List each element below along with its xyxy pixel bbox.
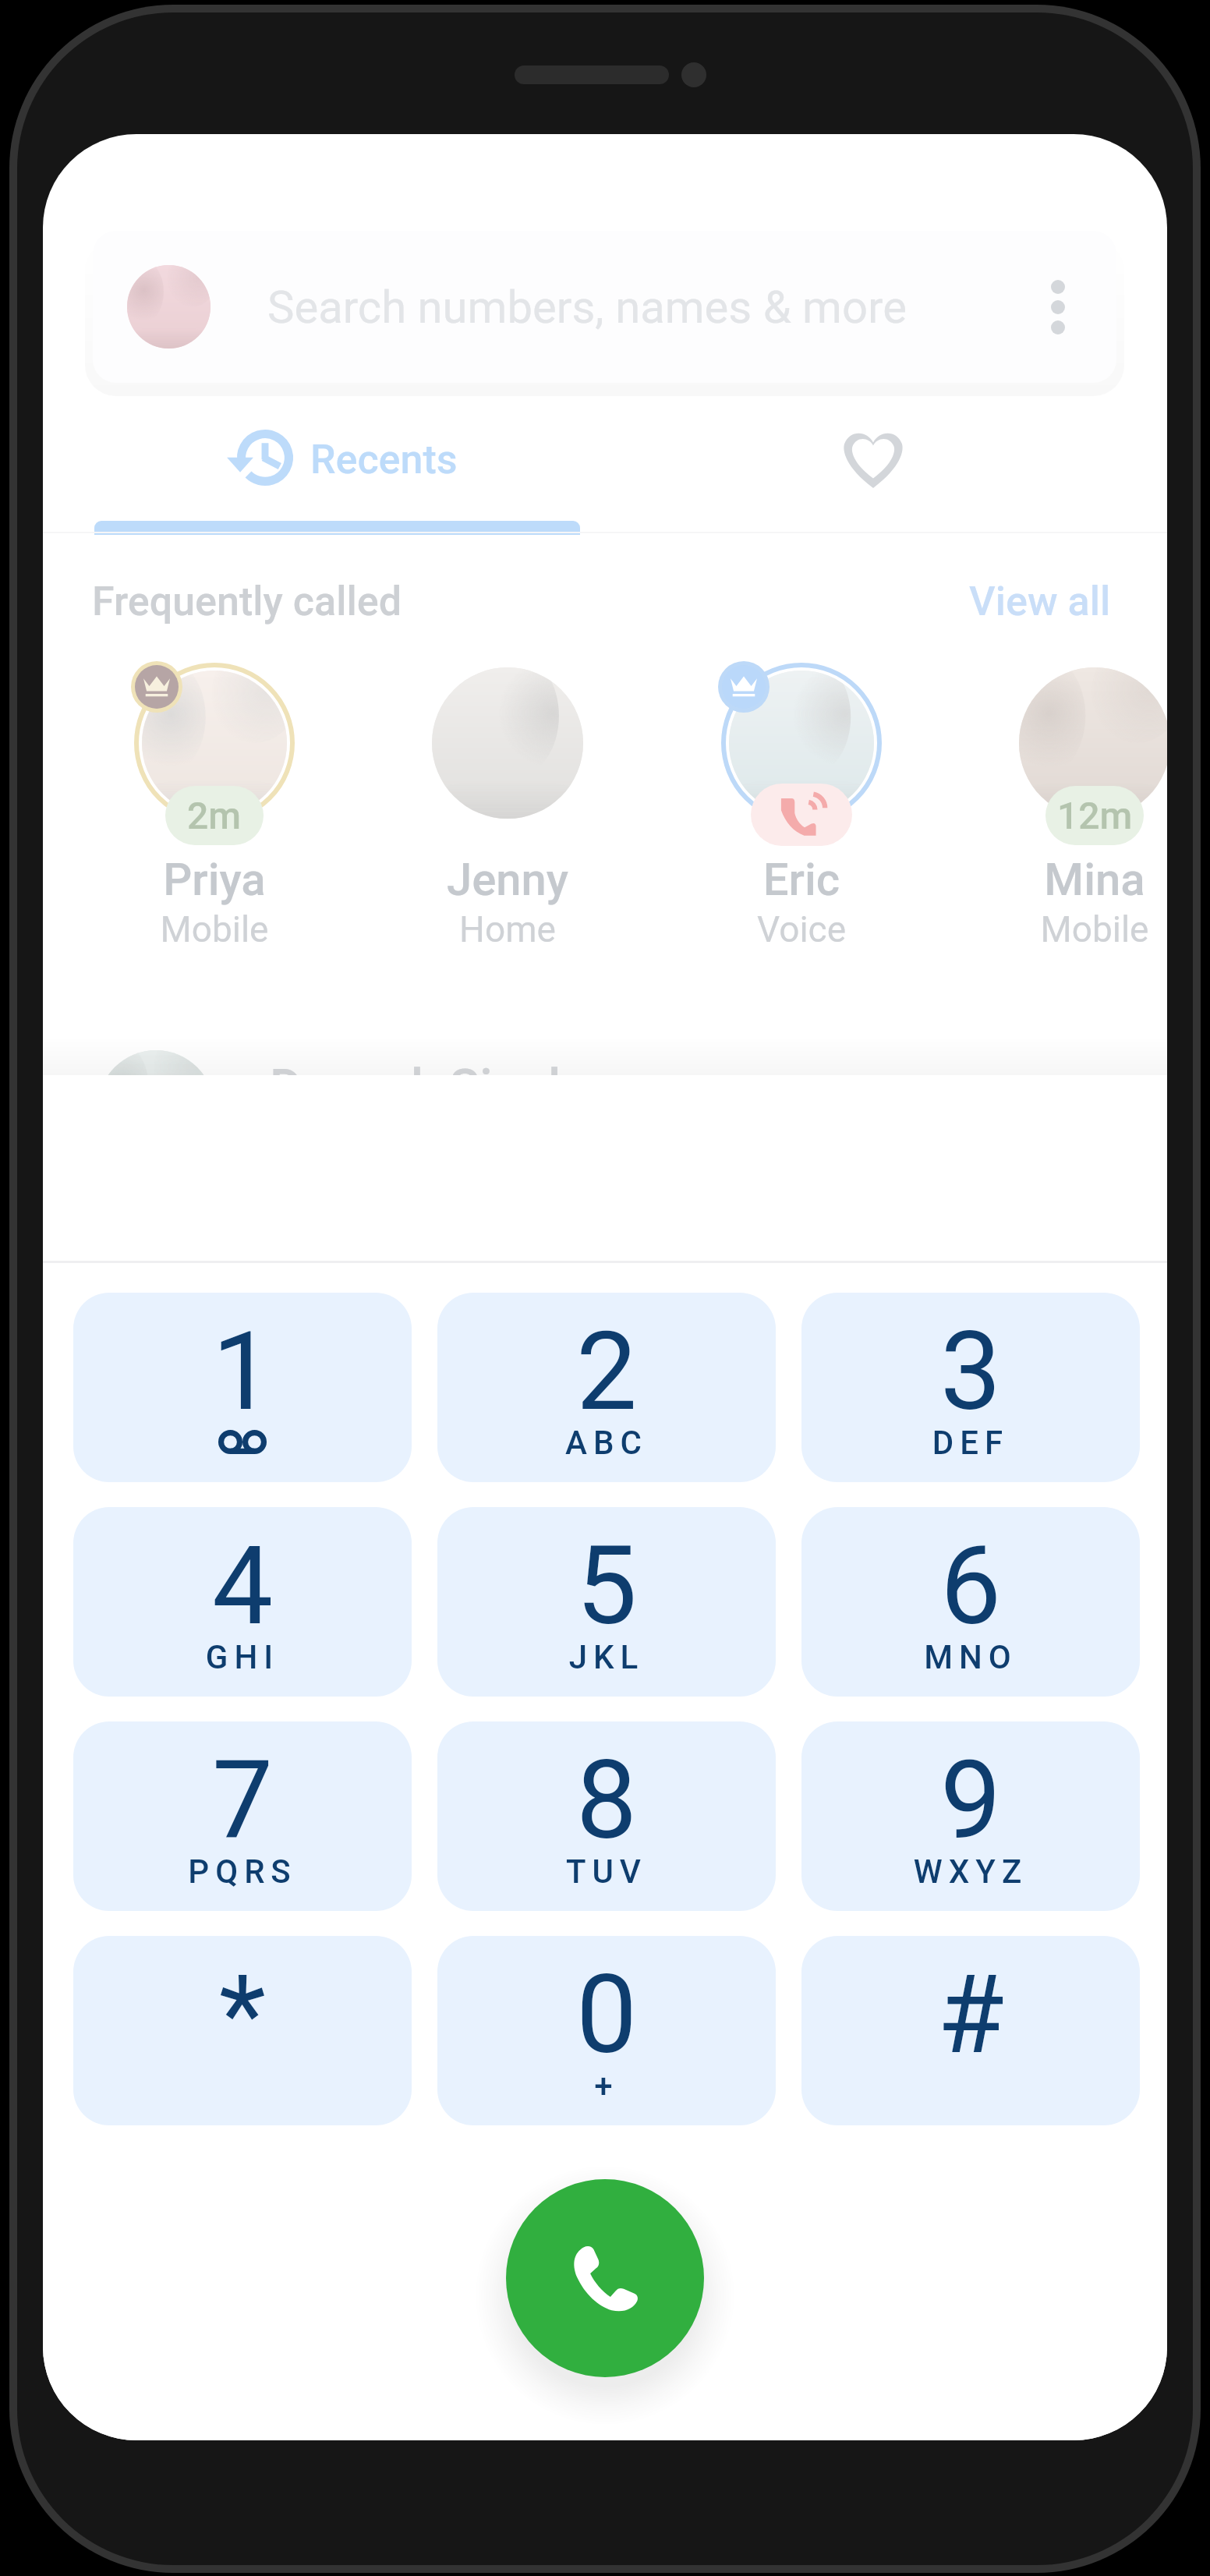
staticText: 2 bbox=[437, 1308, 776, 1435]
staticText: TUV bbox=[437, 1852, 776, 1891]
staticText: Voice bbox=[655, 908, 948, 950]
button[interactable]: 5 bbox=[437, 1507, 776, 1697]
staticText: 9 bbox=[801, 1737, 1140, 1864]
button[interactable]: 8 bbox=[437, 1721, 776, 1911]
button[interactable]: 4 bbox=[73, 1507, 412, 1697]
staticText: DEF bbox=[801, 1424, 1140, 1462]
button[interactable]: Recents bbox=[94, 391, 580, 521]
staticText: 12m bbox=[1057, 794, 1133, 837]
staticText: 0 bbox=[437, 1951, 776, 2079]
staticText: 4 bbox=[73, 1523, 412, 1650]
staticText: # bbox=[801, 1951, 1140, 2079]
button[interactable]: Call bbox=[506, 2179, 704, 2377]
staticText: 1 bbox=[73, 1308, 412, 1435]
staticText: Mina bbox=[948, 853, 1167, 906]
staticText: WXYZ bbox=[801, 1852, 1140, 1891]
staticText: * bbox=[73, 1951, 412, 2079]
staticText: View all bbox=[969, 578, 1111, 625]
staticText: MNO bbox=[801, 1638, 1140, 1676]
staticText: 2m bbox=[187, 794, 242, 837]
button[interactable]: Jenny bbox=[361, 649, 654, 976]
staticText: 7 bbox=[73, 1737, 412, 1864]
staticText: ABC bbox=[437, 1424, 776, 1462]
staticText: Mobile bbox=[948, 908, 1167, 950]
button[interactable]: * bbox=[73, 1936, 412, 2125]
button[interactable]: 3 bbox=[801, 1293, 1140, 1482]
staticText: Home bbox=[361, 908, 654, 950]
staticText: Recents bbox=[310, 436, 458, 483]
staticText: 3 bbox=[801, 1308, 1140, 1435]
button[interactable]: Favourites bbox=[768, 391, 924, 521]
staticText: Mobile bbox=[68, 908, 361, 950]
button[interactable]: 1 bbox=[73, 1293, 412, 1482]
button[interactable]: # bbox=[801, 1936, 1140, 2125]
staticText: Search numbers, names & more bbox=[267, 281, 907, 334]
button[interactable]: Eric bbox=[655, 649, 948, 976]
button[interactable]: 7 bbox=[73, 1721, 412, 1911]
button[interactable]: Search numbers, names & more bbox=[93, 231, 1116, 383]
staticText: JKL bbox=[437, 1638, 776, 1676]
button[interactable]: View all bbox=[969, 578, 1111, 625]
staticText: 6 bbox=[801, 1523, 1140, 1650]
staticText: 8 bbox=[437, 1737, 776, 1864]
staticText: + bbox=[437, 2067, 776, 2105]
staticText: Deepak Singh bbox=[270, 1059, 576, 1117]
button[interactable]: 12m bbox=[948, 649, 1167, 976]
staticText: 5 bbox=[437, 1523, 776, 1650]
button[interactable]: 6 bbox=[801, 1507, 1140, 1697]
button[interactable]: 2 bbox=[437, 1293, 776, 1482]
staticText: Frequently called bbox=[92, 578, 402, 625]
button[interactable]: 9 bbox=[801, 1721, 1140, 1911]
staticText: Priya bbox=[68, 853, 361, 906]
button[interactable]: 2m bbox=[68, 649, 361, 976]
button[interactable]: 0 bbox=[437, 1936, 776, 2125]
button[interactable]: More options bbox=[1019, 262, 1097, 352]
staticText: Eric bbox=[655, 853, 948, 906]
staticText: Jenny bbox=[361, 853, 654, 906]
staticText: GHI bbox=[73, 1638, 412, 1676]
staticText: PQRS bbox=[73, 1852, 412, 1891]
